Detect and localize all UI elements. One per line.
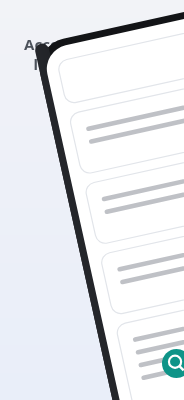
button[interactable]: Bookmarks	[124, 348, 150, 374]
button[interactable]: Search	[162, 349, 184, 378]
staticText: Access the entire	[24, 34, 152, 54]
button[interactable]: Search	[0, 0, 184, 400]
staticText: legal database	[33, 54, 143, 74]
button[interactable]: Home	[98, 340, 124, 366]
